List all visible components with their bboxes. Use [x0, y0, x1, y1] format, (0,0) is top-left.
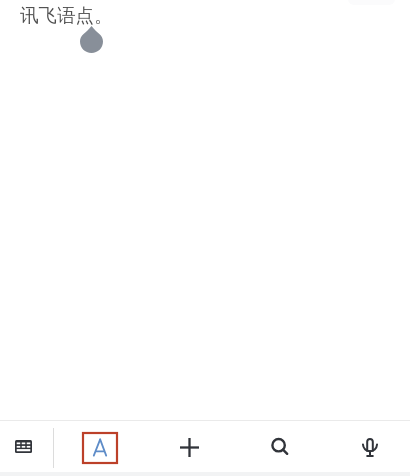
- button[interactable]: Text input: [82, 432, 118, 464]
- button[interactable]: Search: [255, 433, 300, 461]
- staticText: 讯飞语点。: [20, 4, 113, 27]
- button[interactable]: Keyboard: [0, 421, 46, 472]
- button[interactable]: Add: [167, 433, 212, 461]
- button[interactable]: Voice input: [347, 433, 392, 461]
